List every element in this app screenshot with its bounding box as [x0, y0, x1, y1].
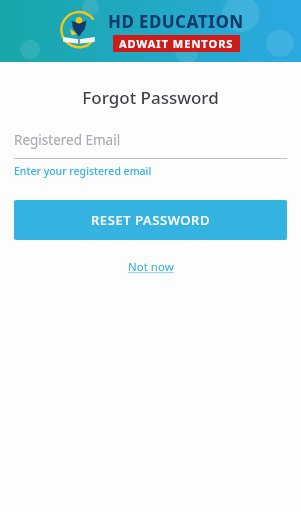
staticText: HD EDUCATION: [108, 10, 244, 33]
staticText: Not now: [128, 259, 174, 275]
staticText: Enter your registered email: [14, 164, 152, 178]
staticText: Forgot Password: [0, 86, 301, 109]
button[interactable]: Registered Email: [14, 131, 287, 159]
button[interactable]: Not now: [120, 256, 182, 278]
staticText: Registered Email: [14, 131, 121, 149]
staticText: ADWAIT MENTORS: [119, 36, 234, 51]
button[interactable]: RESET PASSWORD: [14, 200, 287, 240]
other: HD Education Adwait Mentors logo: [57, 9, 101, 53]
staticText: RESET PASSWORD: [91, 211, 211, 229]
